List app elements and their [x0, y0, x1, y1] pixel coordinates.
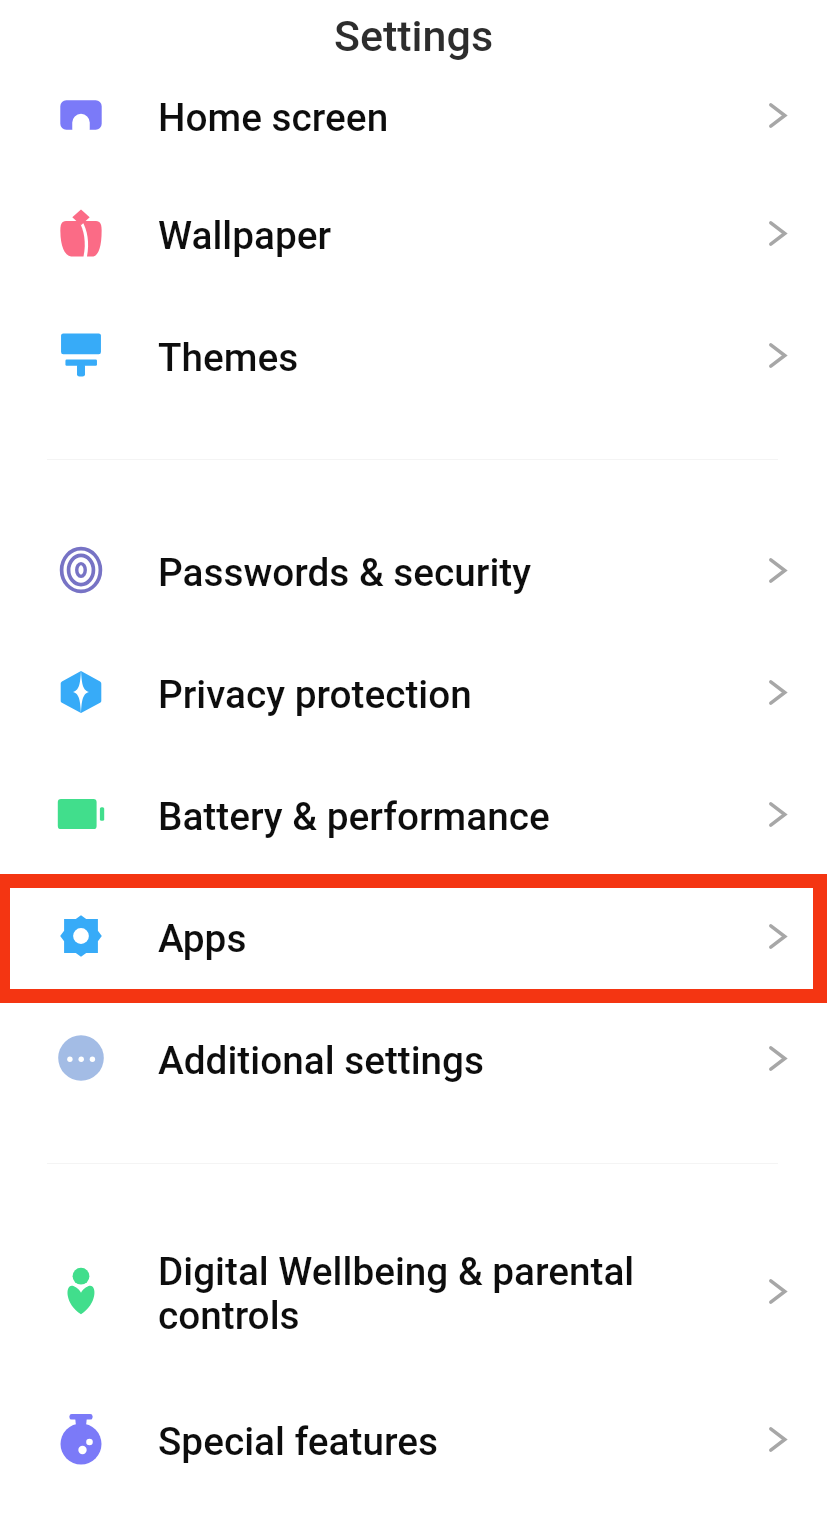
other: Open Themes — [769, 343, 786, 368]
other: Open Passwords & security — [769, 558, 786, 583]
button[interactable]: Themes — [0, 296, 827, 418]
other: Open Home screen — [769, 103, 786, 128]
other: Open Apps — [769, 924, 786, 949]
staticText: Home screen — [158, 95, 709, 140]
other: Open Digital Wellbeing & parental contro… — [769, 1279, 786, 1304]
staticText: Settings — [0, 11, 827, 61]
button[interactable]: Additional settings — [0, 999, 827, 1121]
button[interactable]: Special features — [0, 1380, 827, 1502]
button[interactable]: Digital Wellbeing & parental controls — [0, 1210, 827, 1376]
other: Open Battery & performance — [769, 802, 786, 827]
button[interactable]: Passwords & security — [0, 511, 827, 633]
other: Open Special features — [769, 1427, 786, 1452]
button[interactable]: Battery & performance — [0, 755, 827, 877]
staticText: Wallpaper — [158, 213, 709, 258]
other: Open Privacy protection — [769, 680, 786, 705]
staticText: Apps — [158, 916, 709, 961]
staticText: Battery & performance — [158, 794, 709, 839]
other: Open Additional settings — [769, 1046, 786, 1071]
staticText: Digital Wellbeing & parental controls — [158, 1249, 709, 1338]
staticText: Passwords & security — [158, 550, 709, 595]
staticText: Privacy protection — [158, 672, 709, 717]
button[interactable]: Privacy protection — [0, 633, 827, 755]
staticText: Additional settings — [158, 1038, 709, 1083]
button[interactable]: Home screen — [0, 56, 827, 178]
button[interactable]: Apps — [0, 877, 827, 999]
staticText: Themes — [158, 335, 709, 380]
staticText: Special features — [158, 1419, 709, 1464]
button[interactable]: Wallpaper — [0, 174, 827, 296]
other: Open Wallpaper — [769, 221, 786, 246]
